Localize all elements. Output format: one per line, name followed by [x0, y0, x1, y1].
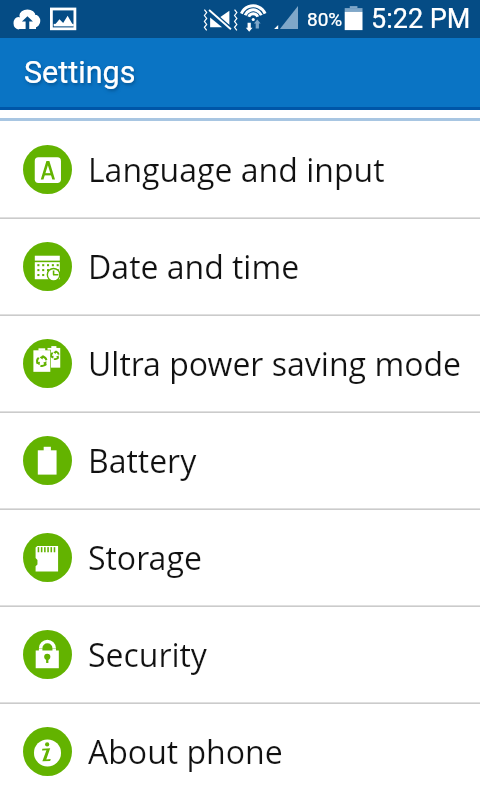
staticText: Security [88, 633, 207, 677]
button[interactable]: Ultra power saving mode [0, 315, 480, 412]
staticText: Battery [88, 439, 197, 483]
staticText: About phone [88, 730, 283, 774]
staticText: Ultra power saving mode [88, 342, 462, 386]
button[interactable]: Language and input [0, 121, 480, 218]
button[interactable]: Battery [0, 412, 480, 509]
button[interactable]: Date and time [0, 218, 480, 315]
button[interactable]: Security [0, 606, 480, 703]
staticText: Settings [24, 55, 136, 91]
staticText: 80% [307, 8, 343, 30]
button[interactable]: About phone [0, 703, 480, 800]
staticText: 5:22 PM [371, 3, 471, 35]
staticText: Storage [88, 536, 202, 580]
staticText: Date and time [88, 245, 300, 289]
button[interactable]: Storage [0, 509, 480, 606]
staticText: Language and input [88, 148, 385, 192]
